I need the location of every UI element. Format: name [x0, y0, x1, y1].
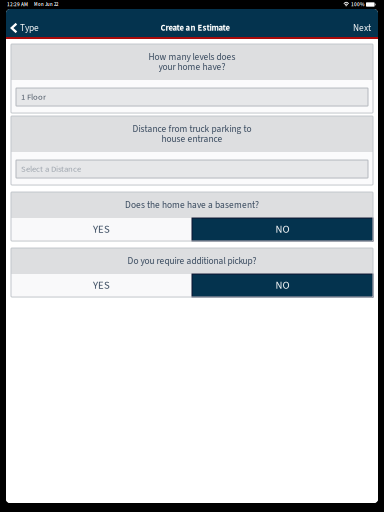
staticText: YES: [93, 278, 110, 293]
staticText: 12:29 AM: [7, 1, 28, 8]
staticText: Mon Jun 22: [28, 1, 58, 8]
staticText: NO: [275, 278, 289, 293]
button[interactable]: 1 Floor: [16, 88, 368, 106]
staticText: 1 Floor: [21, 91, 46, 103]
staticText: Next: [353, 21, 371, 35]
staticText: house entrance: [161, 132, 222, 146]
button[interactable]: Type: [6, 19, 45, 37]
staticText: Distance from truck parking to: [132, 122, 251, 136]
staticText: How many levels does: [148, 50, 235, 64]
staticText: 100%: [349, 1, 366, 8]
staticText: Select a Distance: [21, 163, 81, 175]
staticText: Does the home have a basement?: [125, 198, 259, 212]
button[interactable]: Next: [345, 19, 378, 37]
button[interactable]: YES: [11, 274, 192, 297]
button[interactable]: NO: [192, 274, 373, 297]
staticText: Create an Estimate: [160, 22, 229, 34]
button[interactable]: Select a Distance: [16, 160, 368, 178]
button[interactable]: NO: [192, 218, 373, 241]
staticText: YES: [93, 222, 110, 237]
button[interactable]: YES: [11, 218, 192, 241]
staticText: Do you require additional pickup?: [127, 254, 256, 268]
staticText: NO: [275, 222, 289, 237]
staticText: your home have?: [158, 60, 225, 74]
staticText: Type: [20, 21, 39, 35]
